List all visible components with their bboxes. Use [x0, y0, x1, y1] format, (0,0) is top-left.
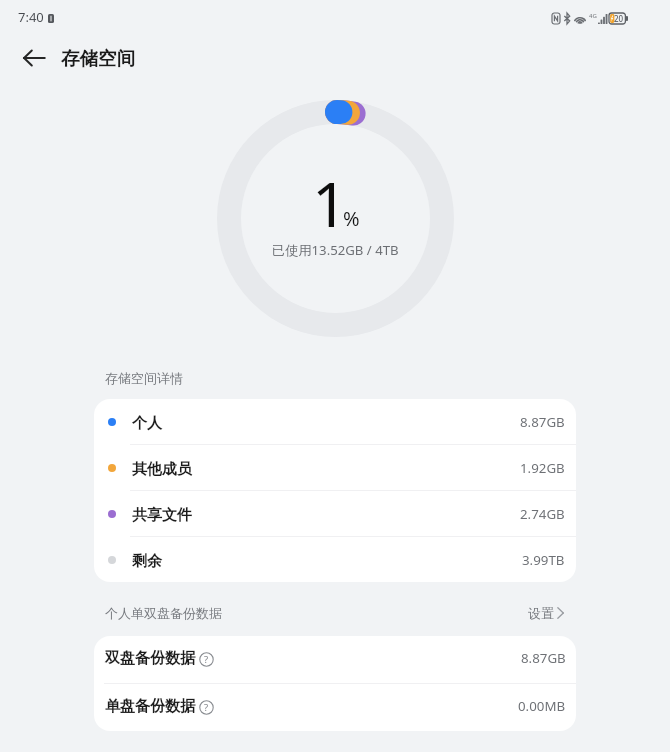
- button[interactable]: 设置: [528, 605, 564, 621]
- button[interactable]: 双盘备份数据: [94, 636, 576, 684]
- staticText: 1.92GB: [520, 459, 565, 477]
- staticText: 8.87GB: [521, 649, 566, 667]
- staticText: 1: [312, 161, 348, 245]
- staticText: 8.87GB: [520, 413, 565, 431]
- staticText: 已使用13.52GB / 4TB: [272, 241, 399, 259]
- staticText: 单盘备份数据: [105, 697, 195, 716]
- staticText: 3.99TB: [522, 551, 565, 569]
- staticText: 2.74GB: [520, 505, 565, 523]
- staticText: 个人单双盘备份数据: [105, 605, 222, 621]
- staticText: 存储空间: [61, 47, 135, 70]
- staticText: 个人: [132, 414, 162, 433]
- button[interactable]: 剩余: [94, 537, 576, 582]
- staticText: ?: [204, 701, 209, 714]
- staticText: 剩余: [132, 552, 162, 571]
- staticText: 0.00MB: [518, 697, 566, 715]
- staticText: 7:40: [18, 8, 44, 26]
- staticText: 4G: [589, 12, 597, 20]
- staticText: 存储空间详情: [105, 370, 183, 386]
- staticText: 双盘备份数据: [105, 649, 195, 668]
- button[interactable]: 个人: [94, 399, 576, 445]
- staticText: %: [343, 205, 360, 232]
- button[interactable]: Back: [12, 36, 56, 80]
- button[interactable]: 单盘备份数据: [94, 684, 576, 731]
- button[interactable]: 共享文件: [94, 491, 576, 537]
- staticText: 其他成员: [132, 460, 192, 479]
- staticText: ?: [204, 653, 209, 666]
- staticText: 共享文件: [132, 506, 192, 525]
- staticText: 20: [614, 13, 624, 24]
- button[interactable]: 其他成员: [94, 445, 576, 491]
- staticText: 设置: [528, 605, 554, 621]
